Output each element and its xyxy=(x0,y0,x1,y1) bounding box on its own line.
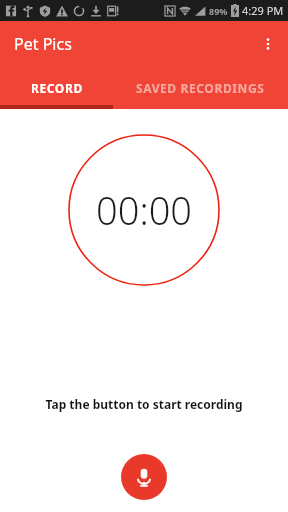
button[interactable]: RECORD xyxy=(0,66,113,109)
staticText: Tap the button to start recording xyxy=(0,396,288,412)
button[interactable]: Start recording xyxy=(121,454,167,500)
staticText: 89% xyxy=(209,5,228,17)
button[interactable]: More options xyxy=(248,24,288,64)
button[interactable]: SAVED RECORDINGS xyxy=(113,66,288,109)
staticText: RECORD xyxy=(31,80,83,96)
staticText: 00:00 xyxy=(96,184,193,236)
staticText: 4:29 PM xyxy=(242,3,284,18)
staticText: Pet Pics xyxy=(14,33,72,55)
staticText: SAVED RECORDINGS xyxy=(136,80,265,96)
